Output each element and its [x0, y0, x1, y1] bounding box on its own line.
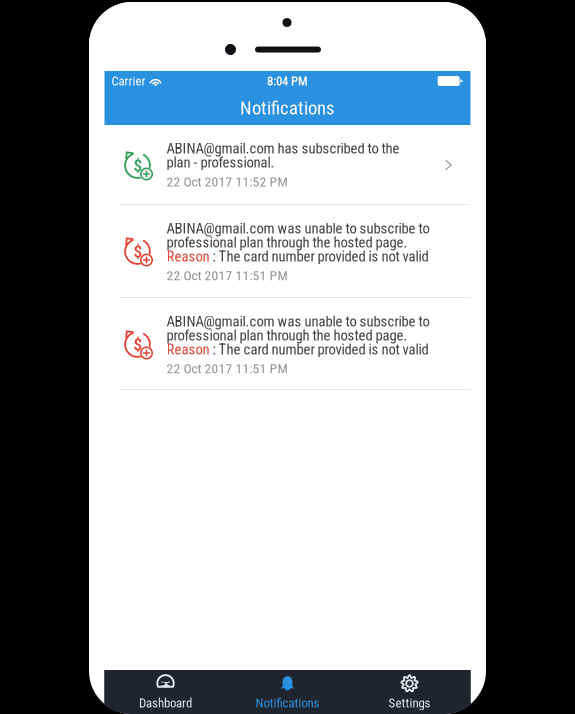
- staticText: Notifications: [240, 97, 335, 119]
- button[interactable]: $: [104, 125, 470, 204]
- staticText: $: [133, 334, 142, 355]
- staticText: : The card number provided is not valid: [209, 248, 428, 265]
- staticText: 8:04 PM: [267, 73, 308, 88]
- staticText: professional plan through the hosted pag…: [166, 327, 407, 344]
- staticText: : The card number provided is not valid: [209, 341, 428, 358]
- staticText: $: [133, 241, 142, 262]
- staticText: 22 Oct 2017 11:51 PM: [166, 361, 287, 377]
- staticText: ABINA@gmail.com has subscribed to the: [166, 140, 399, 157]
- staticText: Reason: [166, 248, 209, 265]
- staticText: Carrier: [111, 73, 145, 88]
- staticText: Notifications: [255, 695, 319, 710]
- staticText: Reason: [166, 341, 209, 358]
- staticText: $: [133, 155, 142, 176]
- staticText: Dashboard: [139, 695, 192, 710]
- staticText: 22 Oct 2017 11:51 PM: [166, 268, 287, 284]
- staticText: Settings: [388, 695, 430, 710]
- button[interactable]: Dashboard: [104, 670, 226, 714]
- button[interactable]: $: [104, 205, 470, 297]
- button[interactable]: $: [104, 298, 470, 389]
- staticText: 22 Oct 2017 11:52 PM: [166, 174, 287, 190]
- button[interactable]: Notifications: [226, 670, 348, 714]
- staticText: professional plan through the hosted pag…: [166, 234, 407, 251]
- button[interactable]: Settings: [348, 670, 470, 714]
- staticText: plan - professional.: [166, 154, 274, 171]
- staticText: ABINA@gmail.com was unable to subscribe …: [166, 313, 429, 330]
- staticText: ABINA@gmail.com was unable to subscribe …: [166, 220, 429, 237]
